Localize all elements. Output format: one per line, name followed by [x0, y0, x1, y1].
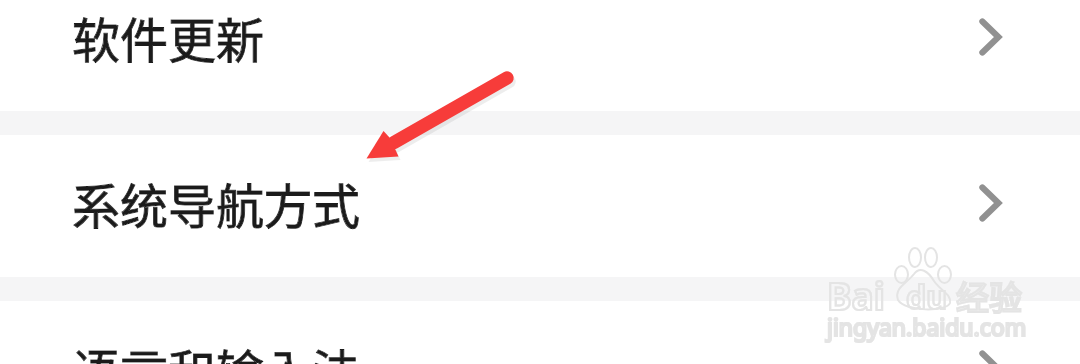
staticText: 系统导航方式	[72, 168, 361, 238]
other: Open	[979, 16, 1005, 58]
staticText: 语言和输入法	[72, 334, 361, 364]
other: Open	[979, 348, 1005, 364]
button[interactable]: 软件更新	[0, 0, 1080, 111]
button[interactable]: 系统导航方式	[0, 135, 1080, 277]
staticText: 软件更新	[72, 2, 265, 72]
other: Open	[979, 182, 1005, 224]
button[interactable]: 语言和输入法	[0, 301, 1080, 364]
